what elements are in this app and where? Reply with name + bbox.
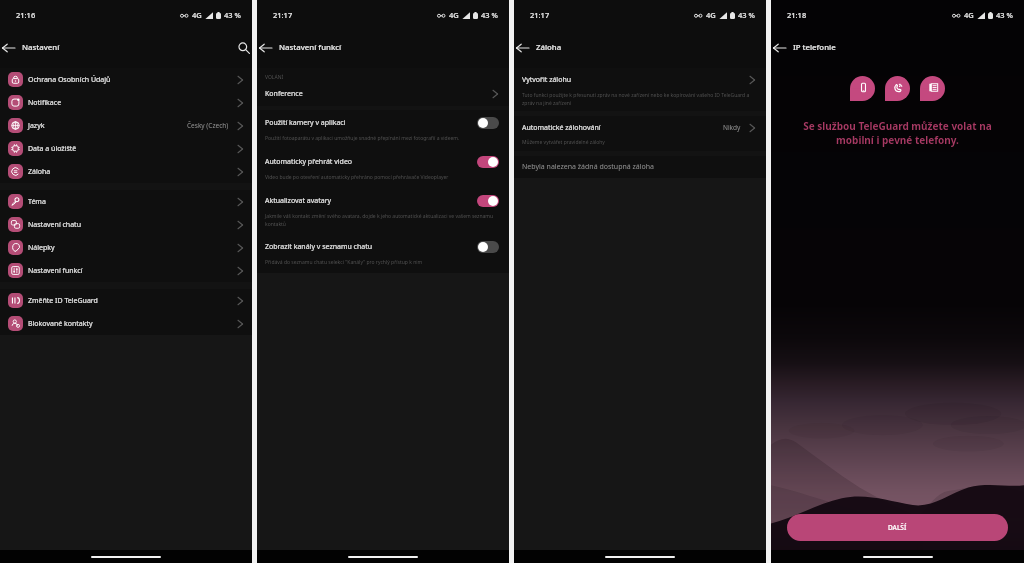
staticText: Automatické zálohování <box>522 123 601 133</box>
staticText: Záloha <box>28 167 51 177</box>
staticText: Nikdy <box>723 123 741 132</box>
staticText: Tuto funkci použijte k přesunutí zpráv n… <box>522 92 754 106</box>
staticText: Vytvořit zálohu <box>522 75 572 85</box>
button[interactable]: Notifikace <box>0 91 252 114</box>
button[interactable]: Automaticky přehrát video <box>257 149 509 188</box>
staticText: Změňte ID TeleGuard <box>28 296 98 306</box>
staticText: Téma <box>28 197 46 207</box>
staticText: Nálepky <box>28 243 55 253</box>
staticText: Nastavení funkcí <box>28 266 83 276</box>
staticText: Data a úložiště <box>28 144 77 154</box>
staticText: Nastavení chatu <box>28 220 81 230</box>
staticText: IP telefonie <box>793 42 836 53</box>
button[interactable]: Search <box>232 36 256 60</box>
staticText: Blokované kontakty <box>28 319 93 329</box>
staticText: 4G <box>192 10 202 20</box>
staticText: 21:18 <box>787 10 807 20</box>
button[interactable]: Back <box>766 34 793 61</box>
button[interactable]: Automatické zálohování <box>514 116 766 139</box>
staticText: Automaticky přehrát video <box>265 157 353 167</box>
button[interactable]: Mobile phone <box>850 76 875 101</box>
button[interactable]: Vytvořit zálohu <box>514 68 766 92</box>
button[interactable]: Aktualizovat avatary <box>257 188 509 234</box>
button[interactable]: Nálepky <box>0 236 252 259</box>
staticText: Můžeme vytvářet pravidelné zálohy <box>522 139 605 146</box>
staticText: 21:17 <box>530 10 550 20</box>
button[interactable]: Contacts <box>920 76 945 101</box>
staticText: Česky (Czech) <box>187 121 229 130</box>
button[interactable]: Téma <box>0 190 252 213</box>
staticText: 43 % <box>481 10 498 20</box>
staticText: Jakmile váš kontakt změní svého avatara,… <box>265 213 495 227</box>
button[interactable]: Toggle <box>477 195 499 207</box>
staticText: Záloha <box>536 42 562 53</box>
button[interactable]: Blokované kontakty <box>0 312 252 335</box>
button[interactable]: Konference <box>257 83 509 104</box>
button[interactable]: Zobrazit kanály v seznamu chatu <box>257 234 509 273</box>
staticText: Nastavení <box>22 42 60 53</box>
staticText: VOLÁNÍ <box>265 74 284 81</box>
button[interactable]: Nastavení funkcí <box>0 259 252 282</box>
staticText: Video bude po otevření automaticky přehr… <box>265 174 449 181</box>
staticText: Notifikace <box>28 98 62 108</box>
staticText: 43 % <box>224 10 241 20</box>
button[interactable]: Back <box>0 34 22 61</box>
staticText: Ochrana Osobních Údajů <box>28 75 111 85</box>
button[interactable]: Toggle <box>477 241 499 253</box>
staticText: 43 % <box>738 10 755 20</box>
button[interactable]: Nastavení chatu <box>0 213 252 236</box>
button[interactable]: Back <box>252 34 279 61</box>
button[interactable]: Jazyk <box>0 114 252 137</box>
button[interactable]: Změňte ID TeleGuard <box>0 289 252 312</box>
button[interactable]: Call <box>885 76 910 101</box>
staticText: Použití fotoaparátu v aplikaci umožňuje … <box>265 135 460 142</box>
staticText: 21:17 <box>273 10 293 20</box>
staticText: 4G <box>964 10 974 20</box>
button[interactable]: DALŠÍ <box>787 514 1008 541</box>
staticText: 4G <box>449 10 459 20</box>
button[interactable]: Toggle <box>477 117 499 129</box>
button[interactable]: Záloha <box>0 160 252 183</box>
button[interactable]: Back <box>509 34 536 61</box>
staticText: Jazyk <box>28 121 45 131</box>
button[interactable]: Použití kamery v aplikaci <box>257 110 509 149</box>
staticText: 21:16 <box>16 10 36 20</box>
button[interactable]: Data a úložiště <box>0 137 252 160</box>
staticText: Konference <box>265 89 303 99</box>
staticText: 4G <box>706 10 716 20</box>
staticText: Přidává do seznamu chatu selekci "Kanály… <box>265 259 423 266</box>
staticText: Nebyla nalezena žádná dostupná záloha <box>522 162 655 172</box>
staticText: Aktualizovat avatary <box>265 196 332 206</box>
button[interactable]: Toggle <box>477 156 499 168</box>
staticText: DALŠÍ <box>888 523 907 532</box>
button[interactable]: Ochrana Osobních Údajů <box>0 68 252 91</box>
staticText: 43 % <box>996 10 1013 20</box>
staticText: Se službou TeleGuard můžete volat na mob… <box>801 119 994 147</box>
staticText: Zobrazit kanály v seznamu chatu <box>265 242 373 252</box>
staticText: Použití kamery v aplikaci <box>265 118 346 128</box>
staticText: Nastavení funkcí <box>279 42 342 53</box>
